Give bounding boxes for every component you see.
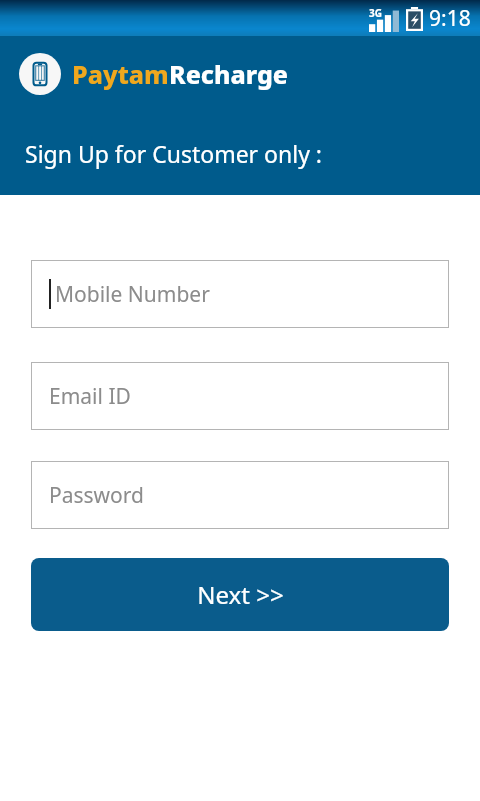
button[interactable]: Next >> bbox=[31, 558, 449, 631]
staticText: 9:18 bbox=[429, 4, 471, 33]
staticText: Recharge bbox=[169, 57, 288, 91]
button[interactable]: Paytam bbox=[0, 36, 480, 112]
staticText: Mobile Number bbox=[55, 280, 210, 309]
staticText: Password bbox=[49, 481, 144, 510]
staticText: Sign Up for Customer only : bbox=[25, 138, 323, 169]
button[interactable]: Password bbox=[31, 461, 449, 529]
staticText: Paytam bbox=[72, 57, 169, 91]
staticText: Email ID bbox=[49, 382, 131, 411]
staticText: 3G bbox=[369, 6, 382, 20]
button[interactable]: Mobile Number bbox=[31, 260, 449, 328]
button[interactable]: Email ID bbox=[31, 362, 449, 430]
staticText: Next >> bbox=[197, 578, 284, 611]
